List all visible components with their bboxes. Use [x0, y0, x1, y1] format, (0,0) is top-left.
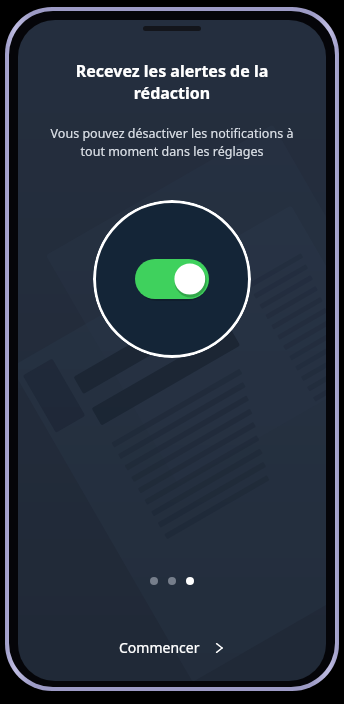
staticText: Commencer [119, 638, 200, 657]
button[interactable]: Activer les alertes de la rédaction [93, 200, 251, 358]
button[interactable]: Commencer [89, 628, 255, 667]
staticText: Recevez les alertes de la rédaction [60, 60, 284, 104]
staticText: Vous pouvez désactiver les notifications… [40, 125, 304, 160]
